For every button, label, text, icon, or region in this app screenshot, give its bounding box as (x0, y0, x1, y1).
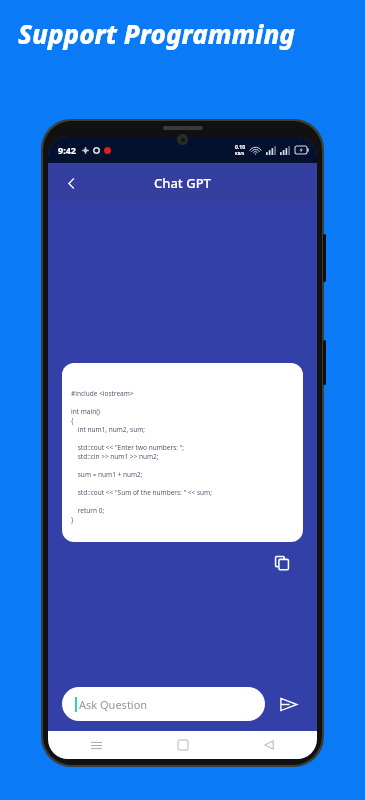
staticText: KB/S (235, 151, 245, 156)
staticText: Support Programming (18, 16, 295, 51)
staticText: { (71, 416, 74, 425)
button[interactable]: Ask Question (62, 687, 265, 721)
staticText: int main() (71, 407, 101, 416)
button[interactable]: #include <iostream> (62, 363, 303, 542)
staticText: 9:42 (58, 144, 76, 156)
button[interactable]: Recent apps (84, 733, 108, 757)
button[interactable]: Send (273, 689, 303, 719)
staticText: 0.10 (235, 144, 245, 151)
staticText: } (71, 515, 74, 524)
staticText: std::cout << "Enter two numbers: "; (71, 443, 185, 452)
staticText: int num1, num2, sum; (71, 425, 145, 434)
button[interactable]: Copy code (269, 550, 295, 576)
button[interactable]: Home (171, 733, 195, 757)
staticText: Ask Question (79, 697, 148, 712)
staticText: std::cin >> num1 >> num2; (71, 452, 159, 461)
staticText: Chat GPT (154, 174, 211, 192)
staticText: #include <iostream> (71, 389, 134, 398)
staticText: return 0; (71, 506, 105, 515)
button[interactable]: Back (54, 166, 88, 200)
staticText: sum = num1 + num2; (71, 470, 143, 479)
button[interactable]: Back (257, 733, 281, 757)
staticText: std::cout << "Sum of the numbers: " << s… (71, 488, 212, 497)
